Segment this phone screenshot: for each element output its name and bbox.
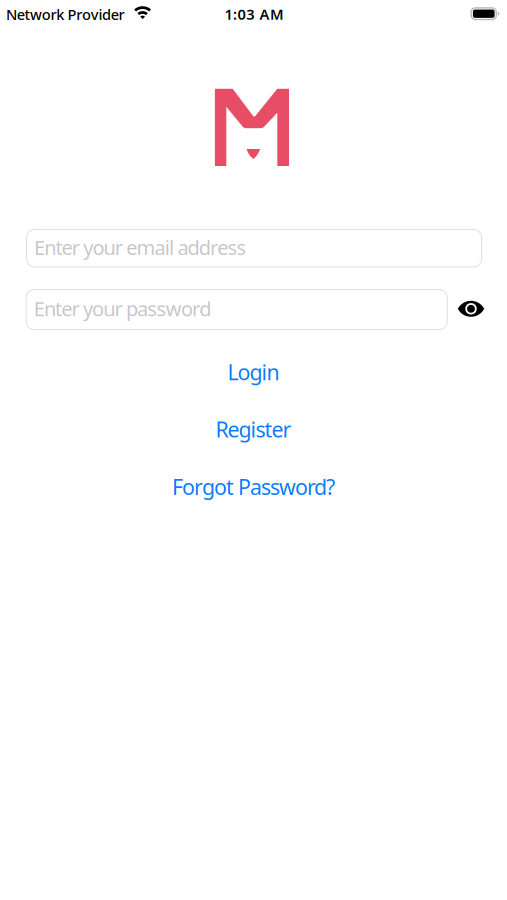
button[interactable]: Enter your password <box>26 289 448 330</box>
staticText: Network Provider <box>6 4 124 24</box>
staticText: Register <box>215 415 291 443</box>
button[interactable]: Enter your email address <box>26 229 482 267</box>
button[interactable]: Login <box>227 358 279 386</box>
staticText: Enter your password <box>34 295 211 322</box>
staticText: 1:03 AM <box>224 4 284 24</box>
staticText: Login <box>227 358 279 386</box>
button[interactable]: Register <box>215 415 291 443</box>
button[interactable]: Forgot Password? <box>172 472 335 501</box>
staticText: Forgot Password? <box>172 472 335 501</box>
button[interactable]: Show password <box>454 294 488 324</box>
staticText: Enter your email address <box>34 234 247 260</box>
